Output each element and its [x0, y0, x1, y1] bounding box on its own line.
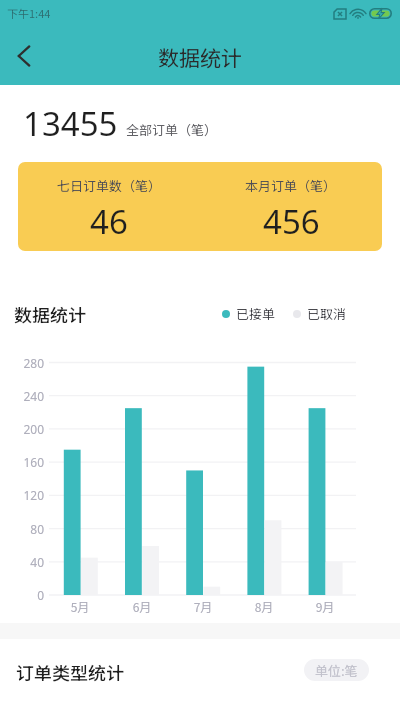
staticText: 280 — [0, 355, 44, 371]
staticText: 数据统计 — [14, 301, 86, 325]
staticText: 9月 — [305, 598, 345, 615]
staticText: 0 — [0, 587, 44, 603]
staticText: 160 — [0, 454, 44, 470]
staticText: 7月 — [183, 598, 223, 615]
staticText: 13455 — [23, 101, 118, 146]
staticText: 456 — [263, 199, 320, 244]
button[interactable]: Back — [0, 32, 48, 80]
staticText: 单位:笔 — [315, 661, 358, 680]
staticText: 下午1:44 — [7, 5, 51, 21]
button[interactable]: 七日订单数（笔） — [18, 162, 382, 251]
staticText: 200 — [0, 421, 44, 437]
staticText: 七日订单数（笔） — [57, 176, 162, 195]
button[interactable]: 已接单 — [222, 304, 276, 323]
staticText: 已接单 — [236, 304, 276, 323]
staticText: 已取消 — [307, 304, 347, 323]
staticText: 本月订单（笔） — [245, 176, 337, 195]
staticText: 5月 — [60, 598, 100, 615]
staticText: 120 — [0, 487, 44, 503]
staticText: 全部订单（笔） — [126, 120, 218, 139]
button[interactable]: 单位:笔 — [304, 659, 369, 681]
staticText: 40 — [0, 554, 44, 570]
staticText: 46 — [90, 199, 128, 244]
staticText: 数据统计 — [158, 42, 242, 72]
staticText: 6月 — [122, 598, 162, 615]
staticText: 240 — [0, 388, 44, 404]
staticText: 80 — [0, 521, 44, 537]
staticText: 8月 — [244, 598, 284, 615]
button[interactable]: 已取消 — [293, 304, 347, 323]
staticText: 订单类型统计 — [16, 659, 124, 683]
